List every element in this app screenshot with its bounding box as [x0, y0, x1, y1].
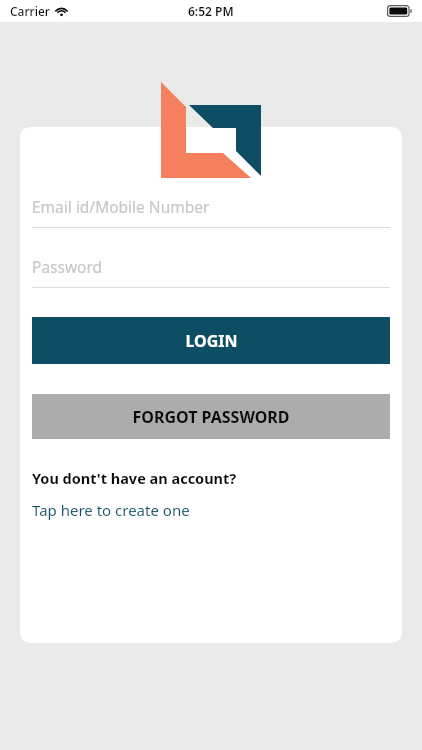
staticText: Tap here to create one [32, 500, 190, 520]
staticText: Email id/Mobile Number [32, 196, 210, 217]
button[interactable]: LOGIN [32, 317, 390, 364]
staticText: You dont't have an account? [32, 468, 237, 488]
staticText: 6:52 PM [188, 3, 234, 19]
button[interactable]: Email id/Mobile Number [32, 193, 390, 228]
staticText: LOGIN [185, 330, 238, 352]
staticText: Password [32, 256, 103, 277]
button[interactable]: FORGOT PASSWORD [32, 394, 390, 439]
other: App logo [161, 82, 261, 178]
button[interactable]: Tap here to create one [32, 500, 190, 520]
staticText: Carrier [10, 3, 50, 19]
button[interactable]: Password [32, 253, 390, 288]
staticText: FORGOT PASSWORD [132, 406, 290, 428]
